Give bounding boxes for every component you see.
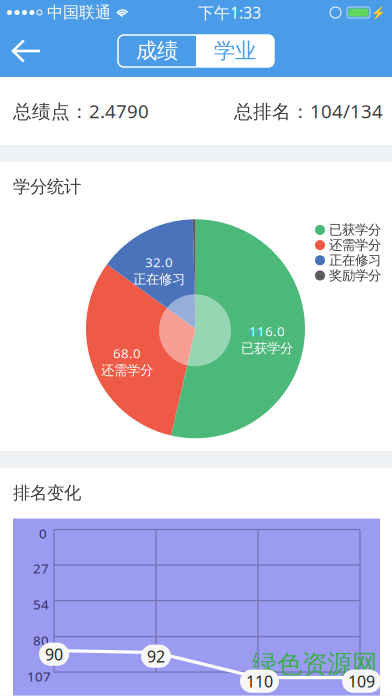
staticText: 32.0 xyxy=(145,253,173,271)
staticText: 正在修习 xyxy=(133,271,185,287)
staticText: 总排名：104/134 xyxy=(234,99,383,123)
staticText: 已获学分 xyxy=(241,340,293,356)
staticText: 110 xyxy=(246,671,273,692)
staticText: 下午1:33 xyxy=(198,2,261,23)
staticText: ⚡ xyxy=(371,6,386,19)
staticText: 90 xyxy=(45,644,63,665)
staticText: 92 xyxy=(147,646,165,667)
button[interactable]: 学业 xyxy=(196,35,274,67)
staticText: 68.0 xyxy=(113,344,141,362)
staticText: 成绩 xyxy=(136,38,178,64)
staticText: 中国联通 xyxy=(47,3,111,22)
staticText: 排名变化 xyxy=(13,482,81,504)
staticText: 54 xyxy=(33,596,49,613)
staticText: 0 xyxy=(39,525,47,542)
button[interactable]: Back xyxy=(0,26,54,75)
staticText: 奖励学分 xyxy=(329,267,381,284)
staticText: 还需学分 xyxy=(329,237,381,253)
staticText: 116.0 xyxy=(249,322,285,340)
staticText: 107 xyxy=(27,668,51,685)
staticText: 109 xyxy=(348,671,375,692)
staticText: 绿色资源网 xyxy=(252,649,377,680)
staticText: 正在修习 xyxy=(329,252,381,268)
staticText: 总绩点：2.4790 xyxy=(13,99,149,123)
staticText: 还需学分 xyxy=(101,362,153,378)
staticText: 已获学分 xyxy=(329,222,381,238)
button[interactable]: 成绩 xyxy=(118,35,196,67)
staticText: 学业 xyxy=(214,38,256,64)
staticText: 学分统计 xyxy=(13,176,81,197)
staticText: 27 xyxy=(33,560,49,577)
staticText: 80 xyxy=(33,632,49,649)
